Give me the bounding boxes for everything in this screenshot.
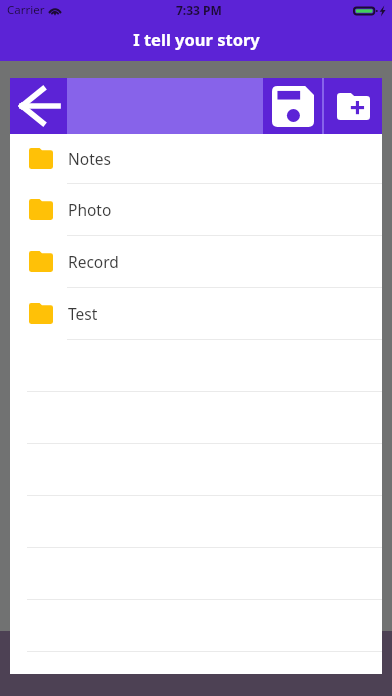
staticText: I tell your story bbox=[133, 28, 260, 50]
staticText: Carrier bbox=[7, 2, 45, 18]
button[interactable]: New folder bbox=[324, 78, 382, 134]
staticText: 7:33 PM bbox=[176, 2, 222, 18]
button[interactable]: Back bbox=[10, 78, 67, 134]
button[interactable]: Record bbox=[10, 236, 382, 288]
button[interactable]: Notes bbox=[10, 134, 382, 184]
staticText: Test bbox=[68, 303, 98, 324]
button[interactable]: Save bbox=[263, 78, 322, 134]
staticText: Photo bbox=[68, 199, 112, 220]
button[interactable]: Photo bbox=[10, 184, 382, 236]
staticText: Record bbox=[68, 251, 119, 272]
staticText: Notes bbox=[68, 148, 111, 169]
button[interactable]: Test bbox=[10, 288, 382, 340]
